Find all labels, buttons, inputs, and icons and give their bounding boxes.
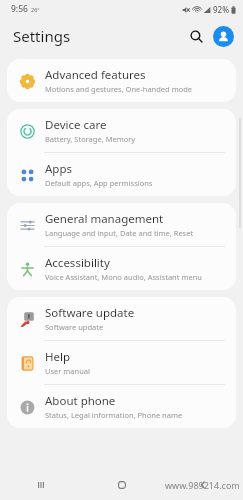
staticText: 92% bbox=[213, 4, 229, 15]
staticText: 9:56 bbox=[11, 3, 28, 15]
button[interactable]: Software update bbox=[7, 297, 236, 340]
button[interactable]: Search bbox=[184, 24, 208, 48]
staticText: 26° bbox=[31, 6, 40, 13]
button[interactable]: General management bbox=[7, 203, 236, 246]
staticText: Motions and gestures, One-handed mode bbox=[45, 84, 193, 94]
button[interactable]: Apps bbox=[7, 153, 236, 196]
button[interactable]: Account bbox=[213, 26, 234, 47]
staticText: Software update bbox=[45, 322, 104, 332]
button[interactable]: Accessibility bbox=[7, 247, 236, 290]
staticText: Help bbox=[45, 349, 71, 365]
staticText: Default apps, App permissions bbox=[45, 178, 153, 188]
button[interactable]: Back bbox=[162, 470, 243, 500]
button[interactable]: Home bbox=[81, 470, 162, 500]
staticText: Accessibility bbox=[45, 255, 110, 271]
staticText: Software update bbox=[45, 305, 135, 321]
staticText: Voice Assistant, Mono audio, Assistant m… bbox=[45, 272, 202, 282]
staticText: Battery, Storage, Memory bbox=[45, 134, 136, 144]
staticText: Apps bbox=[45, 161, 73, 177]
staticText: Advanced features bbox=[45, 67, 146, 83]
staticText: Language and input, Date and time, Reset bbox=[45, 228, 194, 238]
staticText: Settings bbox=[13, 26, 71, 46]
staticText: About phone bbox=[45, 393, 116, 409]
staticText: Status, Legal information, Phone name bbox=[45, 410, 183, 420]
staticText: General management bbox=[45, 211, 164, 227]
button[interactable]: Recents bbox=[0, 470, 81, 500]
staticText: Device care bbox=[45, 117, 107, 133]
staticText: www.989214.com bbox=[165, 479, 240, 491]
button[interactable]: About phone bbox=[7, 385, 236, 428]
staticText: User manual bbox=[45, 366, 90, 376]
button[interactable]: Device care bbox=[7, 109, 236, 152]
button[interactable]: Advanced features bbox=[7, 59, 236, 102]
button[interactable]: Help bbox=[7, 341, 236, 384]
